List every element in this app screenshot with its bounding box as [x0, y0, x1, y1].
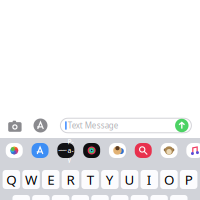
button[interactable]: A [12, 195, 30, 200]
button[interactable]: Send [174, 117, 190, 133]
staticText: E [47, 171, 54, 188]
button[interactable]: O [160, 170, 178, 189]
staticText:  [58, 146, 67, 155]
button[interactable]: S [32, 195, 50, 200]
button[interactable]: Animoji [161, 143, 178, 158]
button[interactable]: App Store [33, 114, 60, 136]
button[interactable]: U [121, 170, 138, 189]
staticText: Q [6, 171, 16, 188]
button[interactable]: App Store [32, 143, 49, 158]
button[interactable]: L [170, 195, 188, 200]
button[interactable]: I [140, 170, 158, 189]
button[interactable]: Apple Music [186, 143, 200, 158]
staticText: Y [106, 171, 114, 188]
button[interactable]: W [22, 170, 40, 189]
button[interactable]: Music [83, 143, 100, 158]
button[interactable]: P [180, 170, 197, 189]
staticText: O [164, 171, 174, 188]
button[interactable]: T [81, 170, 99, 189]
button[interactable]: F [71, 195, 89, 200]
button[interactable]: Memoji stickers [109, 143, 126, 158]
staticText: Text Message [68, 120, 119, 131]
staticText: I [147, 171, 152, 188]
button[interactable]: Q [3, 170, 20, 189]
button[interactable]: R [62, 170, 79, 189]
staticText: R [66, 171, 74, 188]
staticText: Pay [67, 137, 73, 164]
button[interactable]: H [111, 195, 128, 200]
button[interactable]: Camera [0, 114, 33, 136]
staticText: T [87, 171, 94, 188]
button[interactable]: E [42, 170, 59, 189]
button[interactable]: D [52, 195, 69, 200]
button[interactable]: J [131, 195, 148, 200]
staticText: P [185, 171, 193, 188]
button[interactable]: Apple Pay [57, 143, 74, 158]
button[interactable]: #images [135, 143, 152, 158]
button[interactable]: G [91, 195, 109, 200]
button[interactable]: Y [101, 170, 119, 189]
staticText: U [124, 171, 134, 188]
button[interactable]: Photos [6, 143, 23, 158]
staticText: W [25, 171, 37, 188]
button[interactable]: K [150, 195, 168, 200]
